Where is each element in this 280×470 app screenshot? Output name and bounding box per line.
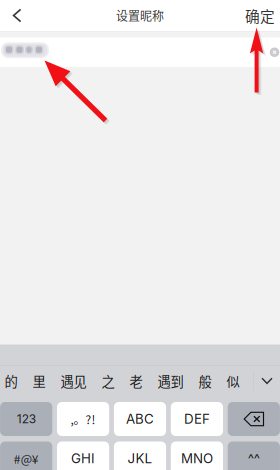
button[interactable]: 般: [191, 365, 219, 396]
staticText: GHI: [71, 450, 95, 466]
button[interactable]: Collapse candidates: [254, 365, 280, 396]
button[interactable]: 123: [0, 402, 52, 436]
button[interactable]: Clear text: [265, 43, 280, 62]
button[interactable]: 里: [25, 365, 53, 396]
staticText: 123: [17, 412, 36, 426]
button[interactable]: Back: [0, 0, 34, 31]
staticText: 老: [129, 371, 142, 391]
staticText: 似: [226, 371, 239, 391]
staticText: DEF: [184, 411, 210, 427]
button[interactable]: ^^: [228, 441, 280, 470]
button[interactable]: DEF: [171, 402, 223, 436]
button[interactable]: 遇见: [53, 365, 94, 396]
button[interactable]: 之: [94, 365, 122, 396]
button[interactable]: ,。?!: [57, 402, 109, 436]
button[interactable]: JKL: [114, 441, 166, 470]
button[interactable]: 确定: [240, 0, 280, 31]
button[interactable]: 似: [219, 365, 247, 396]
staticText: 遇到: [157, 371, 183, 391]
button[interactable]: MNO: [171, 441, 223, 470]
staticText: MNO: [181, 450, 213, 466]
button[interactable]: 的: [0, 365, 25, 396]
staticText: 之: [101, 371, 114, 391]
button[interactable]: #@¥: [0, 441, 52, 470]
staticText: 的: [4, 371, 17, 391]
staticText: 般: [198, 371, 211, 391]
staticText: ABC: [126, 411, 154, 427]
button[interactable]: [228, 402, 280, 436]
button[interactable]: 遇到: [150, 365, 191, 396]
staticText: 遇见: [60, 371, 86, 391]
button[interactable]: ABC: [114, 402, 166, 436]
staticText: 里: [32, 371, 45, 391]
staticText: ^^: [248, 450, 260, 466]
staticText: 设置昵称: [116, 7, 164, 24]
staticText: #@¥: [14, 450, 39, 467]
button[interactable]: 老: [122, 365, 150, 396]
staticText: ,。?!: [71, 410, 96, 428]
button[interactable]: GHI: [57, 441, 109, 470]
staticText: 确定: [245, 5, 275, 26]
staticText: JKL: [127, 450, 152, 466]
